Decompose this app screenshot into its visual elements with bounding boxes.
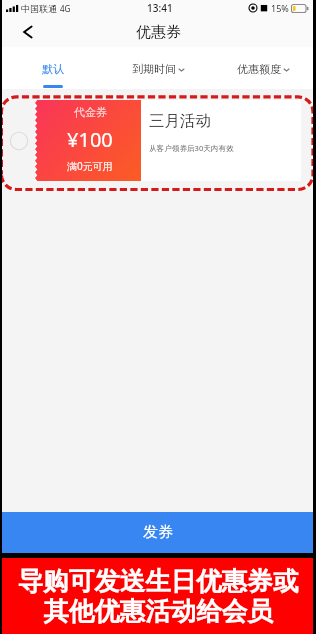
button[interactable]: Back [13, 19, 41, 47]
staticText: 默认 [42, 62, 64, 76]
staticText: 到期时间 [132, 62, 176, 76]
staticText: 满0元可用 [67, 159, 113, 173]
staticText: 优惠额度 [237, 62, 281, 76]
staticText: 优惠券 [136, 23, 181, 42]
other: Select coupon [9, 131, 29, 151]
button[interactable]: 优惠额度 [211, 47, 316, 89]
staticText: 13:41 [147, 1, 173, 15]
staticText: 中国联通 [21, 3, 57, 14]
staticText: 代金券 [74, 105, 107, 119]
staticText: 导购可发送生日优惠券或 其他优惠活动给会员 [0, 565, 316, 627]
staticText: 三月活动 [149, 111, 211, 131]
button[interactable]: Select coupon [0, 95, 316, 192]
staticText: 从客户领券后30天内有效 [149, 143, 234, 153]
staticText: ¥100 [67, 126, 113, 153]
button[interactable]: 发券 [0, 512, 316, 553]
button[interactable]: 默认 [0, 47, 106, 89]
button[interactable]: 到期时间 [106, 47, 211, 89]
staticText: 4G [60, 3, 71, 14]
staticText: 15% [271, 2, 289, 14]
staticText: 发券 [143, 523, 173, 542]
